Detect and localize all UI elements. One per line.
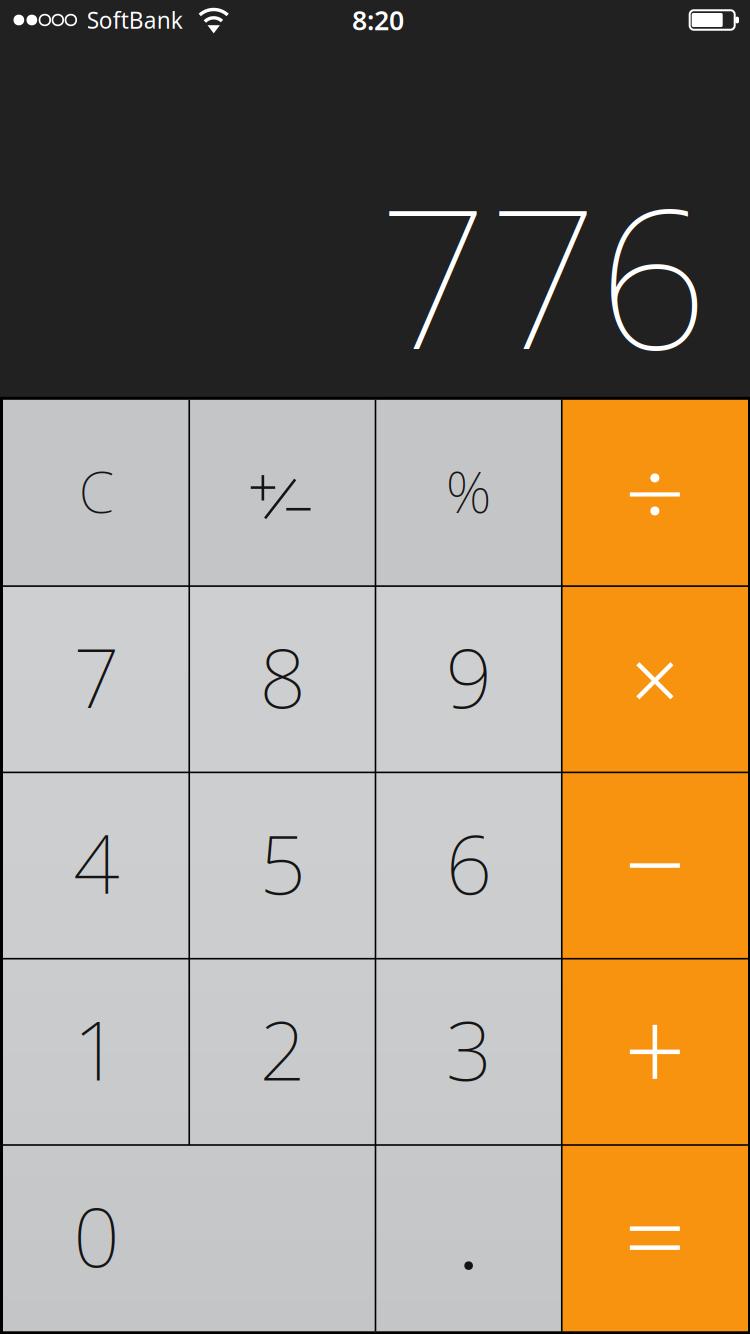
staticText: 6 bbox=[446, 807, 492, 918]
button[interactable]: Multiply bbox=[562, 586, 748, 772]
button[interactable]: 0 bbox=[3, 1145, 375, 1331]
button[interactable]: 6 bbox=[375, 772, 562, 959]
staticText: 8:20 bbox=[352, 2, 404, 38]
staticText: 776 bbox=[378, 142, 708, 406]
staticText: 8 bbox=[259, 621, 305, 732]
button[interactable]: 1 bbox=[3, 959, 189, 1145]
button[interactable]: Clear bbox=[3, 400, 189, 586]
staticText: 7 bbox=[73, 621, 119, 732]
staticText: 2 bbox=[259, 994, 305, 1104]
button[interactable]: 9 bbox=[375, 586, 562, 772]
button[interactable]: Decimal point bbox=[375, 1145, 562, 1331]
button[interactable]: 2 bbox=[189, 959, 375, 1145]
staticText: 4 bbox=[73, 807, 119, 918]
staticText: % bbox=[446, 452, 492, 530]
staticText: 1 bbox=[73, 994, 119, 1104]
staticText: 0 bbox=[73, 1180, 119, 1291]
button[interactable]: 4 bbox=[3, 772, 189, 959]
button[interactable]: 8 bbox=[189, 586, 375, 772]
button[interactable]: 7 bbox=[3, 586, 189, 772]
button[interactable]: Percent bbox=[375, 400, 562, 586]
button[interactable]: Plus minus bbox=[189, 400, 375, 586]
button[interactable]: Equals bbox=[562, 1145, 748, 1331]
staticText: C bbox=[79, 452, 114, 530]
button[interactable]: Minus bbox=[562, 772, 748, 959]
button[interactable]: 5 bbox=[189, 772, 375, 959]
staticText: 3 bbox=[446, 994, 492, 1104]
button[interactable]: 3 bbox=[375, 959, 562, 1145]
staticText: 5 bbox=[259, 807, 305, 918]
staticText: 9 bbox=[446, 621, 492, 732]
button[interactable]: Divide bbox=[562, 400, 748, 586]
button[interactable]: Plus bbox=[562, 959, 748, 1145]
staticText: SoftBank bbox=[87, 5, 183, 35]
